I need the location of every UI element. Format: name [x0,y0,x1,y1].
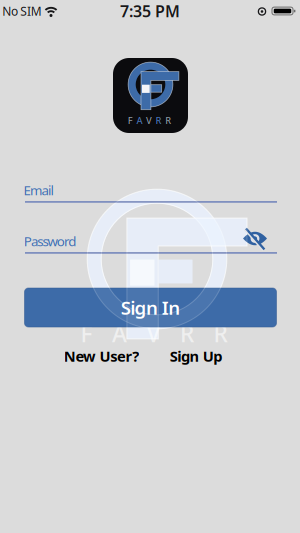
staticText: R [165,114,171,127]
staticText: R [180,318,194,348]
staticText: F [128,114,133,127]
staticText: F [80,318,92,348]
staticText: A [112,318,127,348]
button[interactable]: Sign Up [170,346,222,366]
button[interactable]: Sign In [24,288,276,327]
staticText: V [146,114,152,127]
button[interactable]: Show password [238,223,272,253]
staticText: Sign Up [170,346,222,366]
staticText: 7:35 PM [120,0,180,22]
staticText: Email [23,181,53,199]
staticText: Password [24,232,76,250]
staticText: V [146,318,160,348]
staticText: A [136,114,142,127]
staticText: No SIM [2,3,42,19]
staticText: R [213,318,227,348]
staticText: R [156,114,162,127]
staticText: Sign In [121,295,180,320]
staticText: New User? [64,346,139,366]
